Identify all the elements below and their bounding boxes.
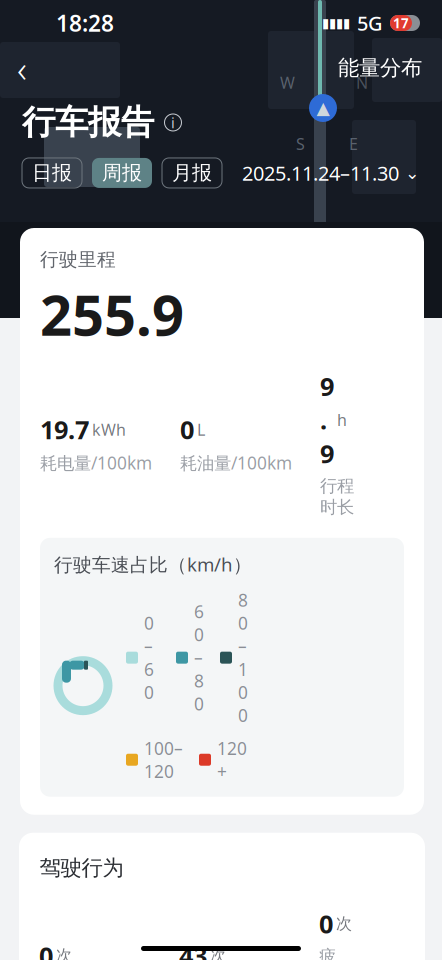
staticText: h <box>337 409 347 430</box>
staticText: 0–60 <box>144 612 154 704</box>
staticText: W <box>280 72 295 93</box>
staticText: 17 <box>393 14 409 32</box>
button[interactable]: Info <box>161 110 185 134</box>
button[interactable]: 能量分布 <box>332 46 428 90</box>
staticText: 耗油量/100km <box>180 451 292 474</box>
staticText: 0 <box>39 939 53 960</box>
staticText: kWh <box>92 419 126 440</box>
staticText: 5G <box>357 10 383 36</box>
staticText: 次 <box>336 914 352 934</box>
staticText: S <box>296 133 305 154</box>
staticText: 次 <box>210 946 226 960</box>
staticText: 18:28 <box>56 8 114 38</box>
staticText: 次 <box>56 946 72 960</box>
staticText: E <box>349 133 358 154</box>
staticText: 行程时长 <box>320 475 354 518</box>
staticText: 0 <box>319 907 333 940</box>
staticText: 行车报告 <box>22 102 154 143</box>
staticText: 255.9 <box>40 277 184 351</box>
staticText: 80–100 <box>238 589 248 727</box>
staticText: ▮▮▮▮ <box>322 15 350 30</box>
staticText: L <box>197 419 205 440</box>
staticText: 日报 <box>32 161 72 185</box>
staticText: 周报 <box>102 161 142 185</box>
staticText: N <box>356 72 368 93</box>
staticText: 耗电量/100km <box>40 451 152 474</box>
staticText: 2025.11.24–11.30 <box>242 160 399 186</box>
staticText: ⌄ <box>405 163 420 183</box>
staticText: 行驶车速占比（km/h） <box>54 552 252 577</box>
staticText: 能量分布 <box>338 55 422 81</box>
staticText: 120+ <box>217 737 247 783</box>
staticText: 100–120 <box>144 737 183 783</box>
staticText: ▲ <box>316 98 329 118</box>
staticText: 43 <box>179 939 207 960</box>
button[interactable]: 周报 <box>92 158 152 188</box>
staticText: 月报 <box>172 161 212 185</box>
button[interactable]: 日报 <box>22 158 82 188</box>
button[interactable]: 2025.11.24–11.30 <box>242 157 420 189</box>
staticText: 0 <box>180 413 194 446</box>
staticText: 60–80 <box>194 600 204 715</box>
staticText: 驾驶行为 <box>39 855 123 881</box>
staticText: 疲劳驾驶 <box>319 946 336 960</box>
staticText: ‹ <box>17 43 27 93</box>
button[interactable]: Back <box>0 46 44 90</box>
staticText: 行驶里程 <box>40 248 116 271</box>
staticText: 19.7 <box>40 413 89 446</box>
staticText: i <box>171 113 175 132</box>
staticText: 9.9 <box>320 369 334 470</box>
button[interactable]: 月报 <box>162 158 222 188</box>
